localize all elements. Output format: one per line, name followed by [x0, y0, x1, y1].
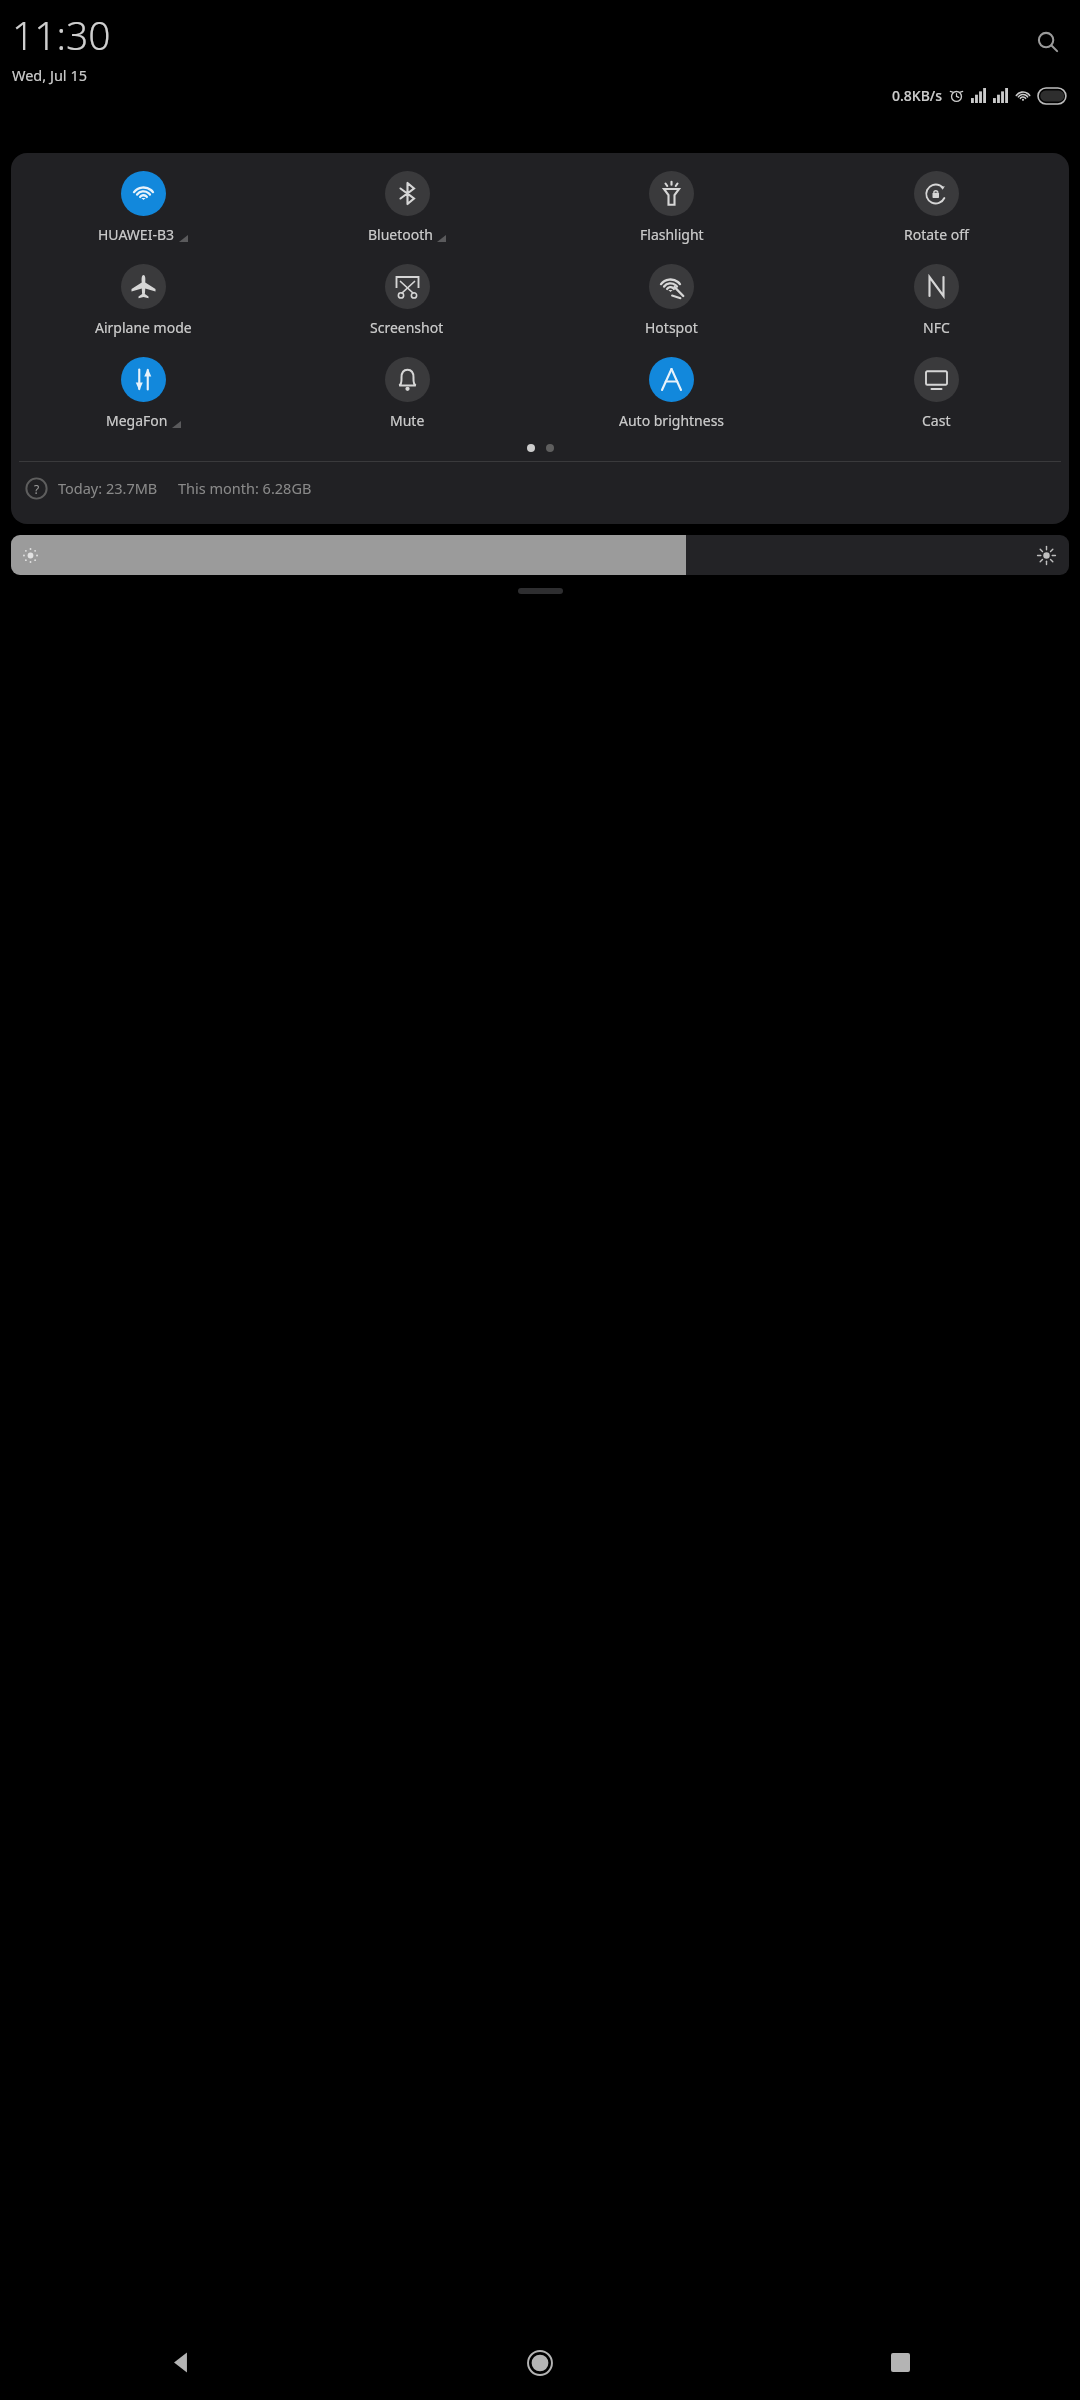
- button[interactable]: MegaFon: [11, 353, 275, 434]
- staticText: Airplane mode: [95, 318, 192, 337]
- button[interactable]: Back: [0, 2325, 360, 2400]
- button[interactable]: Bluetooth: [275, 167, 539, 248]
- staticText: Today: 23.7MB: [58, 478, 158, 498]
- staticText: 11:30: [12, 8, 111, 61]
- button[interactable]: Airplane mode: [11, 260, 275, 341]
- staticText: This month: 6.28GB: [178, 478, 312, 498]
- staticText: Hotspot: [645, 318, 698, 337]
- staticText: ?: [34, 481, 40, 497]
- button[interactable]: Screenshot: [275, 260, 539, 341]
- staticText: Auto brightness: [619, 411, 725, 430]
- button[interactable]: Home: [360, 2325, 720, 2400]
- button[interactable]: Rotate off: [804, 167, 1069, 248]
- staticText: MegaFon: [106, 411, 168, 430]
- button[interactable]: HUAWEI-B3: [11, 167, 275, 248]
- staticText: Bluetooth: [368, 225, 433, 244]
- button[interactable]: Hotspot: [539, 260, 804, 341]
- staticText: Flashlight: [640, 225, 704, 244]
- button[interactable]: Search: [1026, 20, 1070, 64]
- staticText: Wed, Jul 15: [12, 65, 87, 85]
- staticText: HUAWEI-B3: [98, 225, 175, 244]
- staticText: Rotate off: [904, 225, 969, 244]
- staticText: Screenshot: [370, 318, 444, 337]
- button[interactable]: Mute: [275, 353, 539, 434]
- staticText: 0.8KB/s: [892, 86, 943, 105]
- button[interactable]: ?: [11, 462, 1069, 514]
- staticText: Mute: [390, 411, 425, 430]
- button[interactable]: Brightness: [11, 535, 1069, 575]
- staticText: NFC: [923, 318, 950, 337]
- button[interactable]: Recents: [720, 2325, 1080, 2400]
- staticText: Cast: [922, 411, 951, 430]
- button[interactable]: Flashlight: [539, 167, 804, 248]
- button[interactable]: NFC: [804, 260, 1069, 341]
- button[interactable]: Auto brightness: [539, 353, 804, 434]
- button[interactable]: Cast: [804, 353, 1069, 434]
